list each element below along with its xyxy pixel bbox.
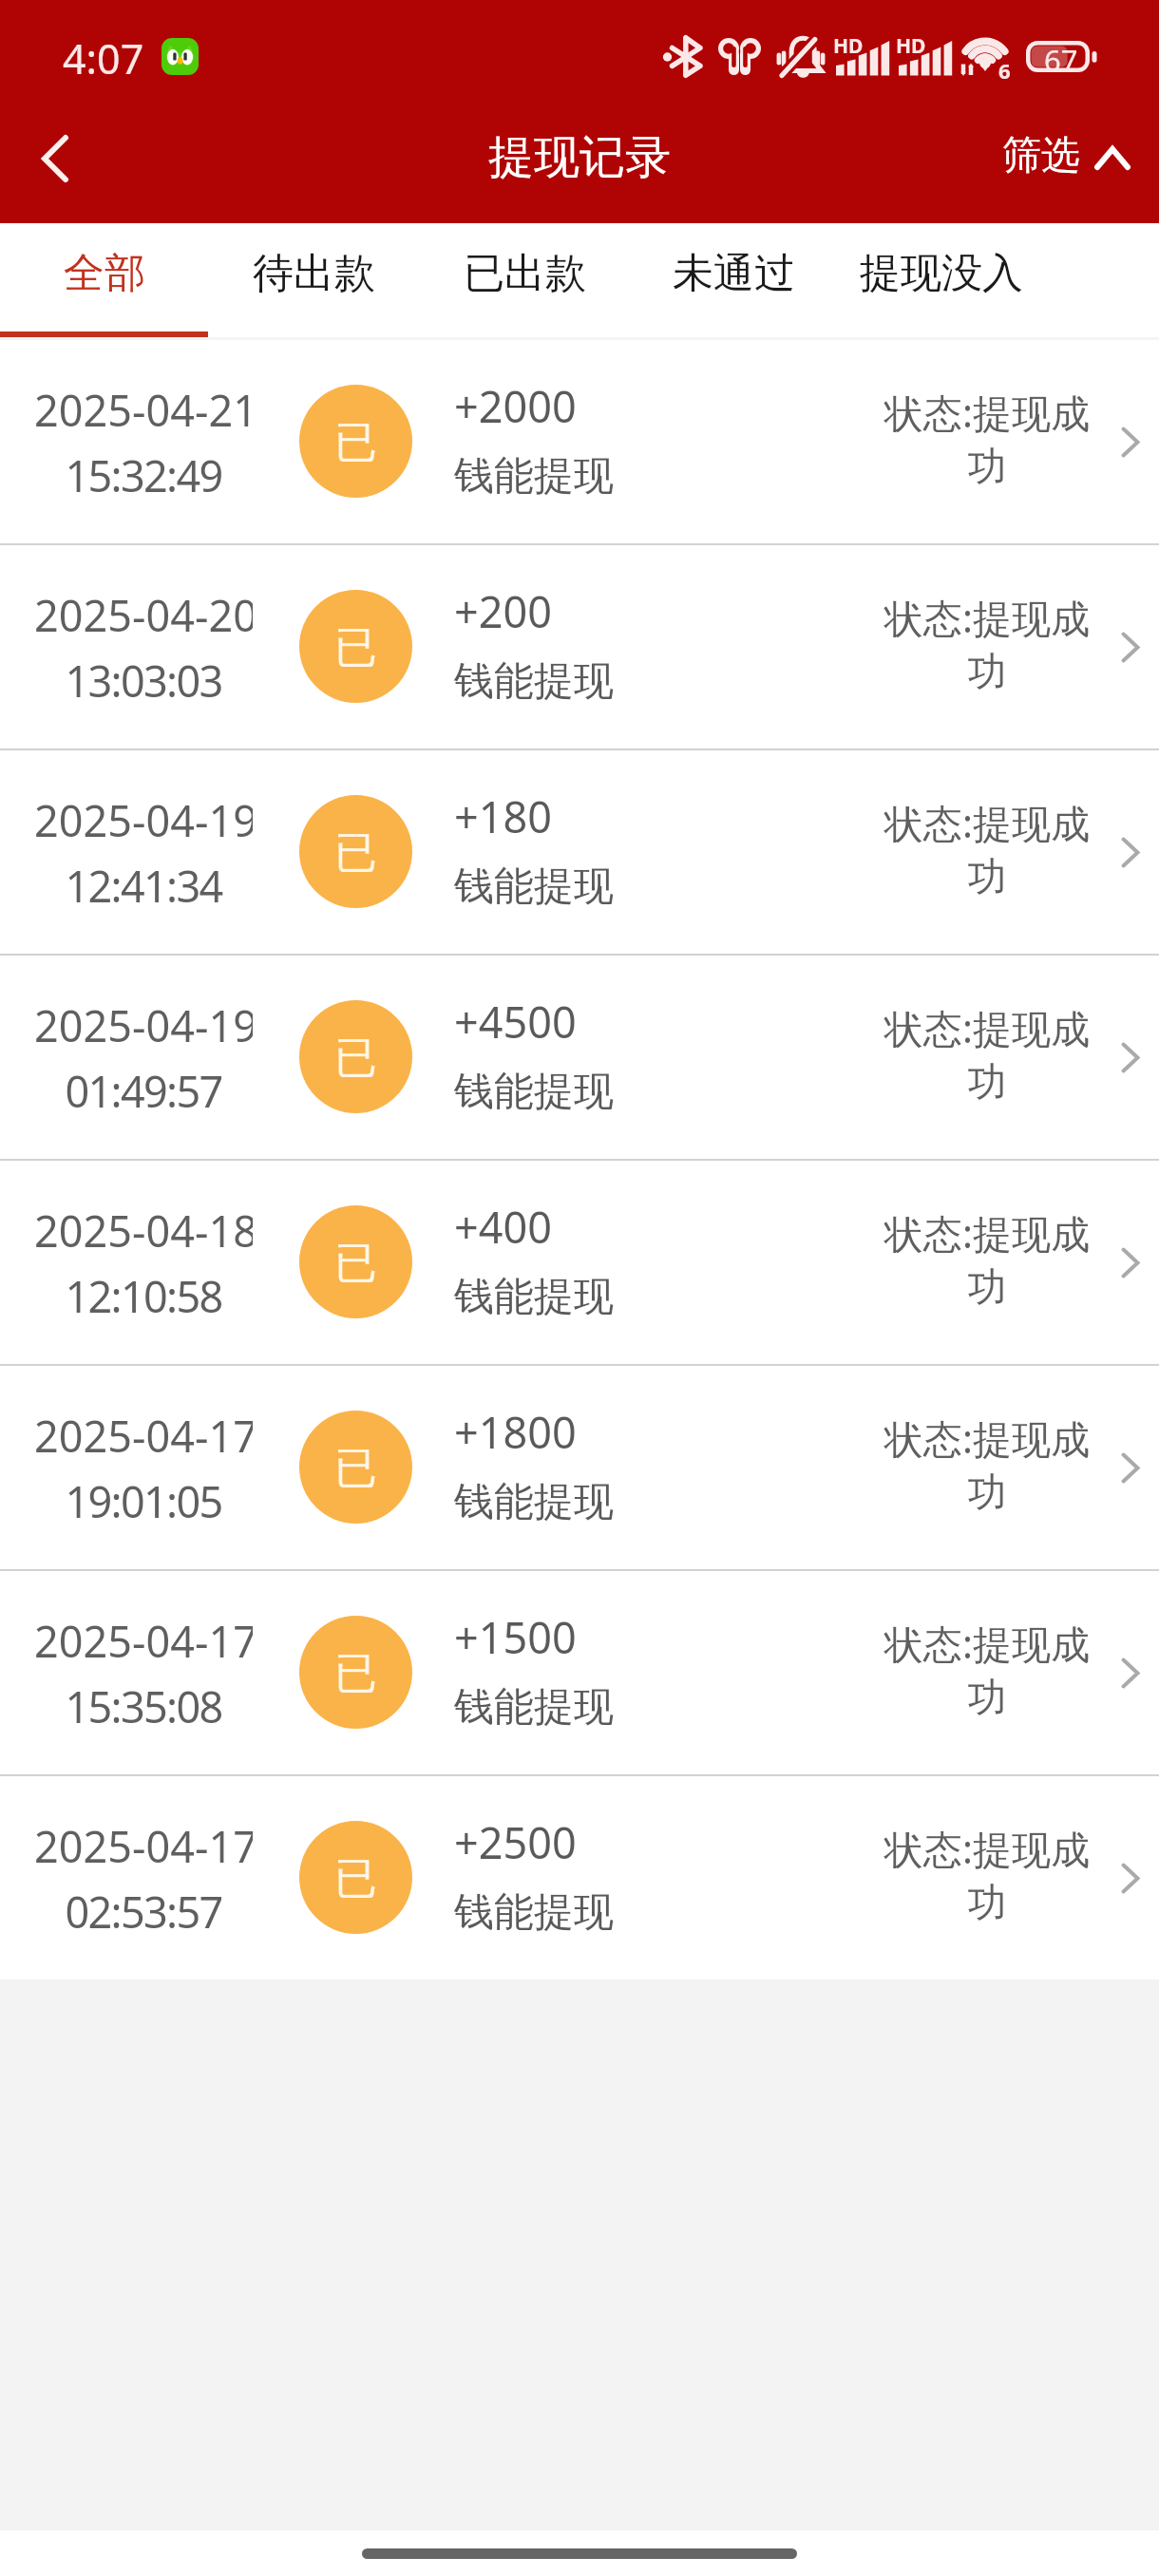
staticText: 已 [334,1647,377,1701]
staticText: +2500 [454,1813,577,1871]
staticText: +180 [454,787,552,845]
button[interactable]: 未通过 [631,223,837,340]
staticText: 2025-04-19 [34,996,253,1054]
button[interactable]: 2025-04-19 [0,750,1159,954]
button[interactable]: 已出款 [418,223,631,340]
staticText: 状态:提现成功 [879,591,1095,696]
button[interactable]: 提现没入 [837,223,1045,340]
staticText: 状态:提现成功 [879,1411,1095,1517]
staticText: 全部 [64,248,145,299]
staticText: 4:07 [63,30,144,86]
staticText: 提现记录 [488,129,671,186]
staticText: 钱能提现 [454,1682,614,1733]
staticText: 状态:提现成功 [879,386,1095,491]
staticText: 19:01:05 [34,1472,253,1530]
staticText: 2025-04-17 [34,1407,253,1465]
staticText: 钱能提现 [454,451,614,502]
staticText: 状态:提现成功 [879,796,1095,901]
button[interactable]: 2025-04-20 [0,545,1159,748]
staticText: 已出款 [464,248,586,299]
staticText: 15:32:49 [34,446,253,504]
staticText: 未通过 [673,248,795,299]
staticText: HD [896,32,926,60]
button[interactable]: 待出款 [209,223,418,340]
staticText: 2025-04-18 [34,1202,253,1260]
staticText: +1800 [454,1403,577,1461]
staticText: 2025-04-21 [34,381,253,439]
button[interactable]: 2025-04-19 [0,956,1159,1159]
staticText: 2025-04-17 [34,1612,253,1670]
staticText: 钱能提现 [454,1887,614,1938]
staticText: +200 [454,582,552,640]
staticText: 状态:提现成功 [879,1617,1095,1722]
staticText: 提现没入 [860,248,1023,299]
button[interactable]: 2025-04-17 [0,1776,1159,1979]
staticText: 67 [1044,40,1078,72]
button[interactable]: 全部 [0,223,209,340]
staticText: 已 [334,621,377,675]
staticText: 已 [334,826,377,881]
staticText: 13:03:03 [34,652,253,710]
staticText: 筛选 [1002,131,1080,180]
staticText: 钱能提现 [454,1067,614,1117]
staticText: 02:53:57 [34,1883,253,1941]
staticText: 2025-04-19 [34,791,253,849]
staticText: HD [833,32,864,60]
staticText: 已 [334,1442,377,1496]
staticText: 15:35:08 [34,1677,253,1735]
staticText: 钱能提现 [454,862,614,912]
staticText: 钱能提现 [454,656,614,707]
staticText: 状态:提现成功 [879,1206,1095,1312]
staticText: +4500 [454,993,577,1051]
button[interactable]: Back [4,106,106,211]
staticText: 已 [334,1852,377,1906]
staticText: 已 [334,1237,377,1291]
staticText: 2025-04-20 [34,586,253,644]
button[interactable]: 2025-04-17 [0,1571,1159,1774]
staticText: 2025-04-17 [34,1817,253,1875]
staticText: 状态:提现成功 [879,1822,1095,1927]
staticText: 已 [334,416,377,470]
staticText: 12:10:58 [34,1267,253,1325]
staticText: 01:49:57 [34,1062,253,1120]
staticText: 已 [334,1032,377,1086]
staticText: 待出款 [253,248,375,299]
staticText: 状态:提现成功 [879,1001,1095,1107]
staticText: +400 [454,1198,552,1256]
button[interactable]: 2025-04-21 [0,340,1159,543]
staticText: 12:41:34 [34,857,253,915]
staticText: +2000 [454,377,577,435]
button[interactable]: 筛选 [982,112,1149,207]
button[interactable]: 2025-04-17 [0,1366,1159,1569]
staticText: +1500 [454,1608,577,1666]
staticText: 6 [998,56,1011,85]
button[interactable]: 2025-04-18 [0,1161,1159,1364]
staticText: 钱能提现 [454,1272,614,1322]
staticText: 钱能提现 [454,1477,614,1527]
